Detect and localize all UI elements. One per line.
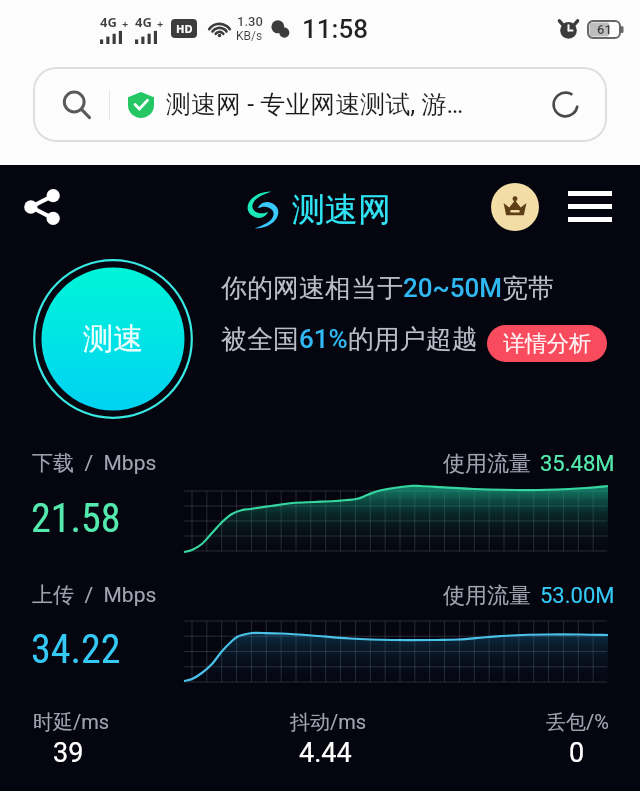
staticText: 34.22	[31, 626, 121, 673]
staticText: 上传 / Mbps	[32, 582, 157, 608]
staticText: 35.48M	[540, 451, 615, 477]
staticText: 被全国61%的用户超越	[221, 323, 478, 356]
button[interactable]: 详情分析	[487, 325, 607, 362]
staticText: 测速网 - 专业网速测试, 游…	[166, 89, 464, 120]
staticText: 时延/ms	[33, 710, 110, 735]
button[interactable]: Menu	[562, 178, 618, 234]
staticText: 21.58	[31, 495, 121, 542]
staticText: 详情分析	[503, 330, 591, 358]
staticText: 抖动/ms	[290, 710, 367, 735]
button[interactable]: 测速	[33, 259, 193, 419]
staticText: 4G	[135, 13, 152, 31]
staticText: 测速	[83, 320, 143, 358]
button[interactable]: VIP	[491, 183, 539, 231]
staticText: 4G	[100, 13, 117, 31]
staticText: 11:58	[302, 14, 368, 44]
staticText: 丢包/%	[546, 710, 609, 735]
staticText: 你的网速相当于20~50M宽带	[221, 272, 555, 305]
other: Search	[61, 90, 91, 120]
button[interactable]: Share	[14, 179, 70, 235]
staticText: 39	[53, 737, 84, 769]
staticText: 使用流量	[443, 582, 531, 610]
other: Refresh	[551, 90, 580, 119]
staticText: 0	[569, 737, 585, 769]
staticText: 61	[597, 22, 612, 37]
staticText: 使用流量	[443, 450, 531, 478]
staticText: 1.30	[237, 14, 263, 29]
staticText: +	[122, 16, 129, 31]
staticText: +	[157, 16, 164, 31]
staticText: 测速网	[292, 189, 391, 231]
staticText: HD	[176, 21, 193, 36]
button[interactable]: Search	[33, 67, 607, 142]
staticText: 下载 / Mbps	[32, 450, 157, 476]
staticText: 4.44	[299, 737, 352, 769]
staticText: KB/s	[236, 29, 263, 43]
staticText: 53.00M	[540, 583, 615, 609]
